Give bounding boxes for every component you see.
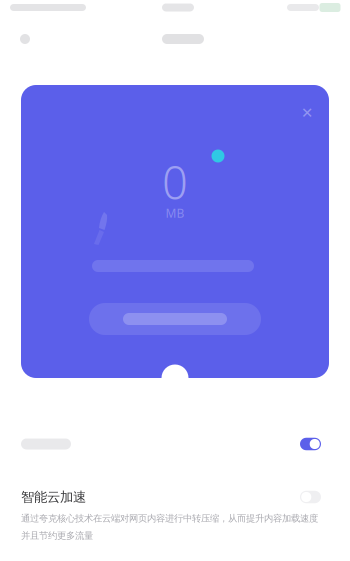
staticText: 并且节约更多流量 (21, 530, 93, 541)
staticText: 通过夸克核心技术在云端对网页内容进行中转压缩，从而提升内容加载速度 (21, 512, 318, 524)
staticText: MB (165, 205, 184, 221)
button[interactable]: Back (9, 23, 41, 55)
button[interactable] (0, 423, 350, 465)
staticText: 0 (162, 152, 188, 212)
button[interactable] (89, 303, 261, 335)
button[interactable]: 智能云加速 (0, 479, 350, 515)
button[interactable]: Dismiss (161, 364, 188, 391)
button[interactable]: Close (293, 99, 321, 127)
staticText: ✕ (301, 105, 313, 121)
staticText: 智能云加速 (21, 489, 86, 505)
